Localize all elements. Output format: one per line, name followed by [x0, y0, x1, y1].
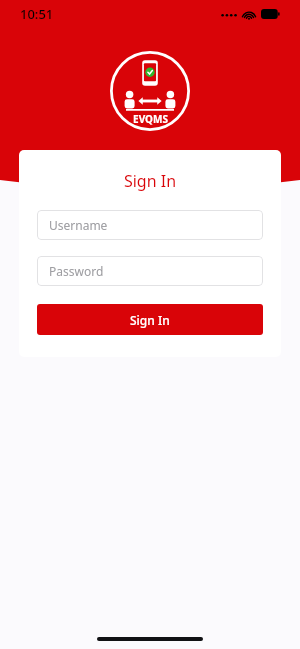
- staticText: Password: [49, 263, 104, 279]
- staticText: EVQMS: [133, 112, 168, 126]
- staticText: Username: [49, 217, 108, 233]
- button[interactable]: Sign In: [37, 304, 263, 335]
- button[interactable]: Password: [37, 256, 263, 286]
- staticText: Sign In: [37, 170, 263, 192]
- button[interactable]: Username: [37, 210, 263, 240]
- staticText: 10:51: [20, 5, 54, 23]
- staticText: Sign In: [130, 312, 170, 328]
